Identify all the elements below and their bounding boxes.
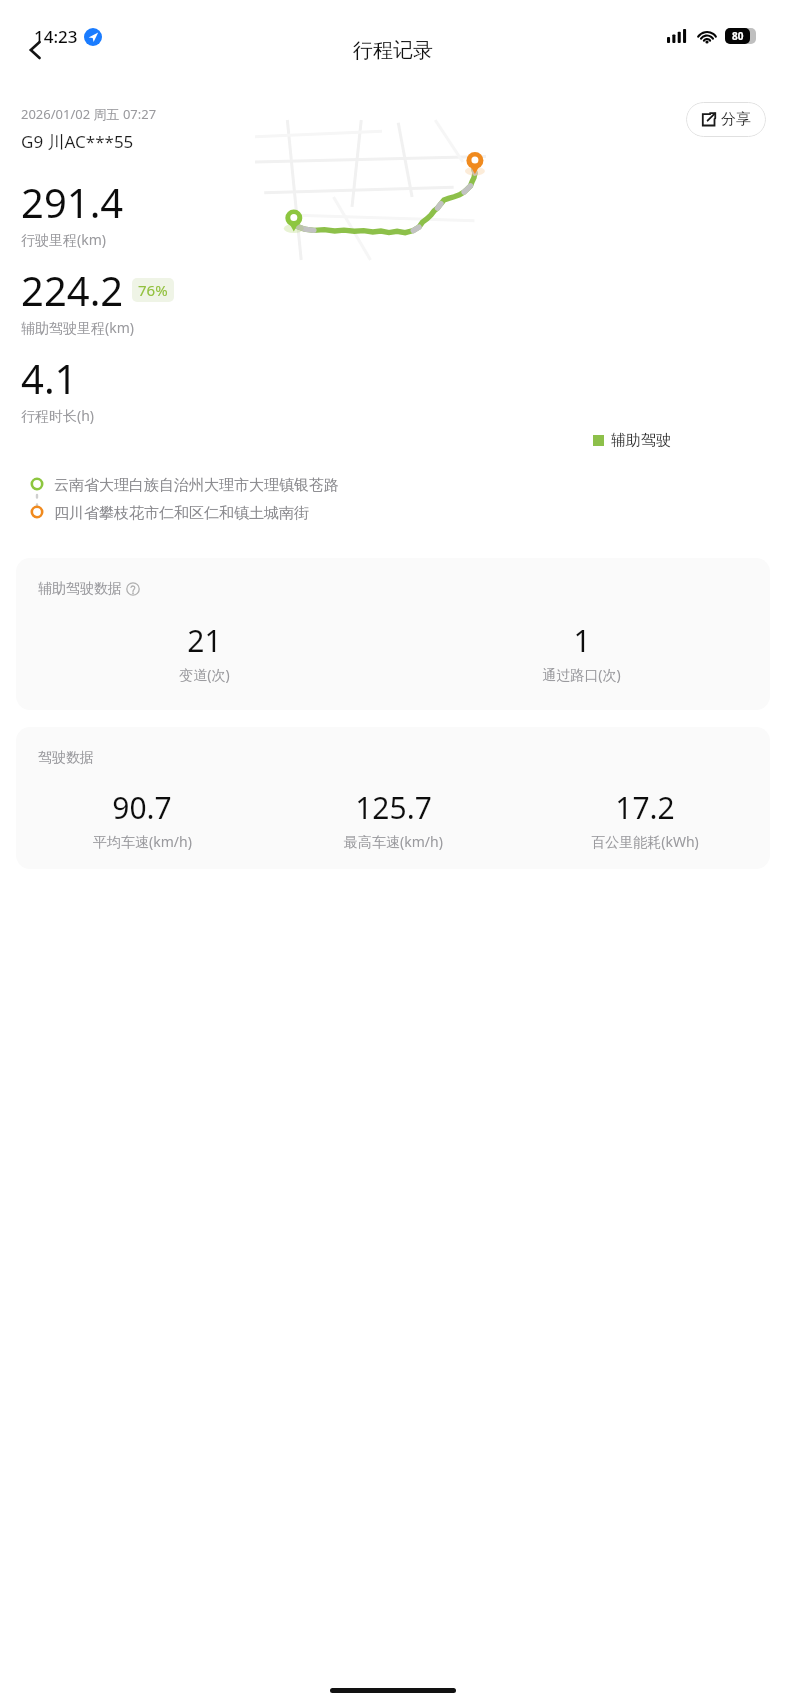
staticText: 90.7 xyxy=(112,787,172,828)
staticText: 2026/01/02 周五 07:27 xyxy=(21,105,157,123)
staticText: 通过路口(次) xyxy=(542,665,621,684)
staticText: 最高车速(km/h) xyxy=(344,832,443,851)
staticText: 行驶里程(km) xyxy=(21,230,106,249)
staticText: G9 川AC***55 xyxy=(21,130,134,153)
staticText: 辅助驾驶 xyxy=(611,431,671,450)
staticText: 17.2 xyxy=(615,787,675,828)
staticText: 224.2 xyxy=(21,263,124,317)
staticText: 变道(次) xyxy=(179,665,230,684)
button[interactable]: 驾驶数据 xyxy=(16,727,770,869)
staticText: 辅助驾驶里程(km) xyxy=(21,318,134,337)
staticText: 125.7 xyxy=(355,787,432,828)
staticText: 14:23 xyxy=(34,25,78,48)
staticText: 辅助驾驶数据 xyxy=(38,580,122,598)
staticText: 291.4 xyxy=(21,175,124,229)
staticText: 行程时长(h) xyxy=(21,406,95,425)
staticText: 驾驶数据 xyxy=(38,749,94,767)
staticText: 平均车速(km/h) xyxy=(93,832,192,851)
staticText: 76% xyxy=(138,280,168,300)
staticText: 80 xyxy=(732,29,744,43)
button[interactable]: 分享 xyxy=(686,102,766,137)
button[interactable]: 辅助驾驶数据 xyxy=(16,558,770,710)
staticText: 4.1 xyxy=(21,351,78,405)
staticText: 行程记录 xyxy=(353,38,433,63)
staticText: 1 xyxy=(573,620,591,661)
button[interactable]: 返回 xyxy=(14,28,58,72)
staticText: 分享 xyxy=(721,110,751,129)
staticText: 四川省攀枝花市仁和区仁和镇土城南街 xyxy=(54,504,309,523)
staticText: 百公里能耗(kWh) xyxy=(591,832,699,851)
staticText: 21 xyxy=(187,620,222,661)
staticText: 云南省大理白族自治州大理市大理镇银苍路 xyxy=(54,476,339,495)
